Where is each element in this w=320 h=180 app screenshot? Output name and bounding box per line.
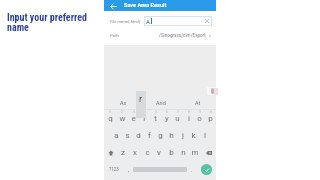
staticText: ?123	[109, 167, 119, 172]
button[interactable]: t	[150, 111, 161, 126]
staticText: 8	[188, 110, 190, 114]
button[interactable]: k	[188, 127, 199, 143]
staticText: u	[175, 114, 180, 123]
staticText: g	[158, 131, 163, 140]
button[interactable]: y	[161, 111, 172, 126]
button[interactable]: ,	[124, 158, 133, 180]
button[interactable]: g	[155, 127, 166, 143]
staticText: ,	[128, 166, 130, 173]
staticText: 6	[166, 110, 168, 114]
staticText: 2	[121, 110, 123, 114]
button[interactable]: i	[183, 111, 194, 126]
staticText: d	[136, 131, 141, 140]
button[interactable]: a	[110, 127, 122, 143]
button[interactable]: n	[177, 143, 189, 161]
button[interactable]: h	[166, 127, 177, 143]
button[interactable]: As	[104, 96, 142, 109]
staticText: i	[188, 114, 190, 123]
staticText: Path	[110, 33, 119, 38]
staticText: 5	[155, 110, 157, 114]
staticText: 0	[210, 110, 212, 114]
button[interactable]: o	[194, 111, 205, 126]
button[interactable]: j	[177, 127, 188, 143]
staticText: s	[125, 131, 130, 140]
button[interactable]: c	[141, 143, 153, 161]
staticText: f	[148, 131, 151, 140]
staticText: b	[169, 148, 174, 157]
staticText: .	[191, 166, 193, 173]
button[interactable]: z	[117, 143, 129, 161]
button[interactable]: w	[116, 111, 128, 126]
button[interactable]: u	[172, 111, 183, 126]
staticText: 9	[199, 110, 201, 114]
staticText: r	[143, 114, 146, 123]
staticText: 1	[109, 110, 111, 114]
button[interactable]: Backspace	[201, 143, 216, 161]
button[interactable]: q	[104, 111, 116, 126]
button[interactable]: b	[165, 143, 177, 161]
staticText: e	[131, 114, 136, 123]
button[interactable]: x	[129, 143, 141, 161]
staticText: At	[195, 100, 201, 106]
staticText: o	[197, 114, 202, 123]
button[interactable]: e	[128, 111, 139, 126]
button[interactable]: f	[144, 127, 155, 143]
staticText: l	[204, 131, 206, 140]
staticText: q	[108, 114, 113, 123]
button[interactable]: ?123	[104, 158, 124, 180]
button[interactable]: And	[142, 96, 179, 109]
button[interactable]: s	[122, 127, 133, 143]
staticText: r	[139, 94, 143, 105]
staticText: n	[181, 148, 186, 157]
staticText: k	[191, 131, 196, 140]
button[interactable]: Path	[110, 31, 212, 40]
button[interactable]: Back	[104, 0, 216, 11]
staticText: Save Area Result	[124, 2, 167, 9]
staticText: a	[114, 131, 119, 140]
staticText: 3	[133, 110, 135, 114]
staticText: Input your preferred name	[7, 12, 87, 33]
staticText: /Sinograss/cim/Export	[159, 33, 206, 38]
staticText: h	[169, 131, 174, 140]
button[interactable]: At	[179, 96, 216, 109]
button[interactable]: Enter	[201, 164, 212, 175]
button[interactable]: Back	[109, 2, 117, 10]
staticText: 7	[177, 110, 179, 114]
button[interactable]: r	[139, 111, 150, 126]
staticText: m	[191, 148, 199, 157]
staticText: w	[119, 114, 126, 123]
button[interactable]: v	[153, 143, 165, 161]
staticText: File name(.html)	[110, 19, 141, 24]
staticText: x	[133, 148, 137, 157]
staticText: And	[156, 100, 166, 106]
button[interactable]: m	[189, 143, 201, 161]
staticText: t	[154, 114, 157, 123]
staticText: v	[157, 148, 161, 157]
staticText: p	[208, 114, 213, 123]
button[interactable]: File name(.html)	[110, 16, 212, 26]
button[interactable]: d	[133, 127, 144, 143]
staticText: A	[146, 18, 150, 25]
staticText: j	[182, 131, 184, 140]
staticText: y	[165, 114, 169, 123]
staticText: c	[145, 148, 150, 157]
button[interactable]: l	[199, 127, 210, 143]
button[interactable]: Clear text	[204, 18, 210, 24]
button[interactable]: p	[205, 111, 216, 126]
staticText: z	[121, 148, 125, 157]
staticText: As	[120, 100, 127, 106]
button[interactable]: More	[207, 87, 217, 95]
button[interactable]: Shift	[104, 143, 117, 161]
